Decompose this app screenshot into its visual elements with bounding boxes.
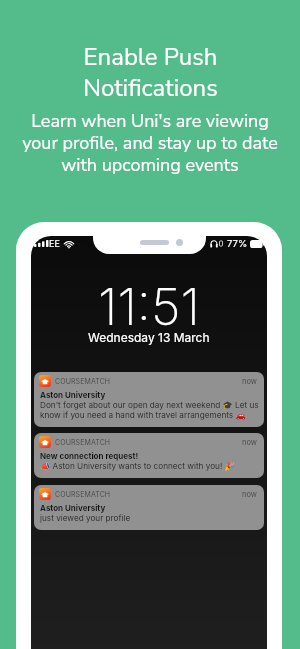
staticText: 11:51 [98,276,200,338]
staticText: Learn when Uni's are viewing your profil… [22,109,278,178]
button[interactable]: COURSEMATCH [34,372,264,427]
staticText: Don't forget about our open day next wee… [40,400,261,420]
staticText: Aston University [40,390,106,400]
staticText: Wednesday 13 March [88,330,210,345]
staticText: 77% [227,238,248,249]
staticText: now [242,377,257,386]
staticText: COURSEMATCH [55,377,111,385]
staticText: Enable Push Notifications [83,41,218,104]
staticText: EE [49,238,60,249]
button[interactable]: COURSEMATCH [34,485,264,530]
staticText: just viewed your profile [40,513,131,523]
staticText: New connection request! [40,451,139,461]
button[interactable]: COURSEMATCH [34,433,264,478]
staticText: Aston University [40,503,106,513]
staticText: 📣 Aston University wants to connect with… [40,461,235,471]
staticText: now [242,438,257,447]
staticText: COURSEMATCH [55,438,111,446]
staticText: now [242,490,257,499]
staticText: COURSEMATCH [55,490,111,498]
